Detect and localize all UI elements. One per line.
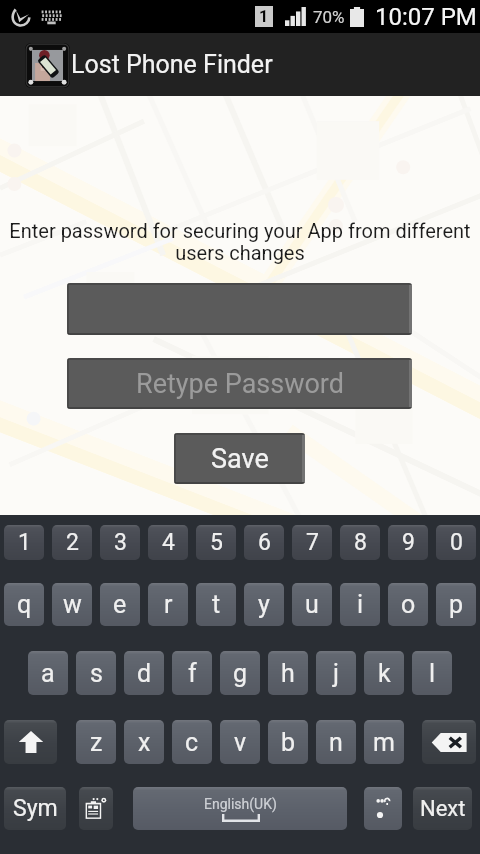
staticText: e <box>113 590 127 619</box>
button[interactable]: Next <box>413 787 472 830</box>
staticText: v <box>234 728 247 757</box>
staticText: a <box>41 659 55 688</box>
button[interactable]: k <box>364 651 404 695</box>
staticText: English(UK) <box>204 796 277 812</box>
button[interactable]: z <box>76 720 116 764</box>
staticText: c <box>185 728 199 757</box>
staticText: n <box>329 728 343 757</box>
button[interactable]: 4 <box>148 525 188 560</box>
button[interactable]: 6 <box>244 525 284 560</box>
button[interactable]: 3 <box>100 525 140 560</box>
staticText: q <box>17 590 32 619</box>
button[interactable]: t <box>196 583 236 626</box>
button[interactable]: 2 <box>52 525 92 560</box>
staticText: 1 <box>259 7 269 26</box>
button[interactable]: w <box>52 583 92 626</box>
button[interactable]: c <box>172 720 212 764</box>
staticText: f <box>188 659 197 688</box>
button[interactable]: 8 <box>340 525 380 560</box>
staticText: 9 <box>402 529 415 556</box>
button[interactable]: v <box>220 720 260 764</box>
staticText: s <box>90 659 103 688</box>
button[interactable]: Sym <box>4 787 66 830</box>
button[interactable]: Save <box>174 433 305 484</box>
staticText: k <box>378 659 391 688</box>
staticText: x <box>138 728 151 757</box>
button[interactable]: Retype Password <box>67 358 412 409</box>
staticText: z <box>90 728 103 757</box>
staticText: t <box>212 590 221 619</box>
staticText: Save <box>211 443 269 475</box>
staticText: r <box>164 590 173 619</box>
staticText: 8 <box>354 529 367 556</box>
staticText: m <box>373 728 395 757</box>
button[interactable]: o <box>388 583 428 626</box>
staticText: w <box>63 590 82 619</box>
staticText: 4 <box>162 529 175 556</box>
staticText: b <box>281 728 296 757</box>
staticText: o <box>401 590 416 619</box>
staticText: 0 <box>450 529 463 556</box>
staticText: 70% <box>313 7 345 27</box>
button[interactable]: 7 <box>292 525 332 560</box>
button[interactable]: a <box>28 651 68 695</box>
button[interactable]: 5 <box>196 525 236 560</box>
button[interactable]: y <box>244 583 284 626</box>
button[interactable]: Shift <box>4 720 57 764</box>
staticText: h <box>281 659 295 688</box>
button[interactable] <box>67 283 412 335</box>
button[interactable]: English(UK) <box>133 787 347 830</box>
staticText: 1 <box>18 529 31 556</box>
staticText: 5 <box>210 529 223 556</box>
button[interactable]: n <box>316 720 356 764</box>
button[interactable]: i <box>340 583 380 626</box>
button[interactable]: d <box>124 651 164 695</box>
staticText: y <box>258 590 270 619</box>
button[interactable]: r <box>148 583 188 626</box>
button[interactable]: s <box>76 651 116 695</box>
staticText: 10:07 PM <box>375 3 477 31</box>
staticText: Retype Password <box>136 368 344 400</box>
staticText: g <box>233 659 248 688</box>
button[interactable]: Backspace <box>422 720 476 764</box>
button[interactable]: Input method options <box>79 787 113 830</box>
staticText: p <box>449 590 464 619</box>
staticText: j <box>333 659 339 688</box>
staticText: 3 <box>114 529 127 556</box>
button[interactable]: l <box>412 651 452 695</box>
staticText: Sym <box>13 795 58 822</box>
button[interactable]: x <box>124 720 164 764</box>
button[interactable]: g <box>220 651 260 695</box>
button[interactable]: j <box>316 651 356 695</box>
button[interactable]: m <box>364 720 404 764</box>
staticText: d <box>137 659 152 688</box>
button[interactable]: q <box>4 583 44 626</box>
button[interactable]: u <box>292 583 332 626</box>
staticText: 2 <box>66 529 79 556</box>
button[interactable]: 9 <box>388 525 428 560</box>
staticText: Next <box>420 796 466 822</box>
button[interactable]: 1 <box>4 525 44 560</box>
button[interactable]: e <box>100 583 140 626</box>
button[interactable]: Period and symbols <box>364 787 402 830</box>
button[interactable]: b <box>268 720 308 764</box>
staticText: Lost Phone Finder <box>71 50 273 79</box>
button[interactable]: h <box>268 651 308 695</box>
staticText: i <box>357 590 364 619</box>
staticText: l <box>429 659 436 688</box>
staticText: 7 <box>306 529 319 556</box>
staticText: 6 <box>258 529 271 556</box>
staticText: Enter password for securing your App fro… <box>5 219 475 265</box>
button[interactable]: 0 <box>436 525 476 560</box>
button[interactable]: p <box>436 583 476 626</box>
staticText: u <box>305 590 319 619</box>
button[interactable]: f <box>172 651 212 695</box>
